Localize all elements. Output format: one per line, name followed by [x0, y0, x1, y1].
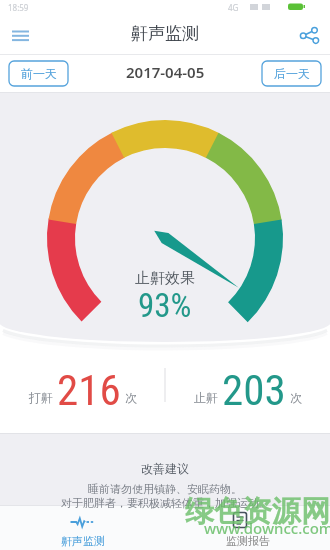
staticText: 鼾声监测	[61, 534, 105, 548]
staticText: 止鼾效果	[135, 269, 195, 288]
staticText: 203	[222, 365, 286, 415]
staticText: 止鼾	[194, 390, 218, 405]
staticText: 打鼾	[29, 390, 53, 405]
staticText: 前一天	[21, 66, 57, 81]
button[interactable]: 前一天	[9, 61, 68, 86]
button[interactable]	[294, 22, 326, 50]
staticText: 216	[57, 365, 121, 415]
staticText: 18:59	[8, 2, 29, 13]
staticText: 监测报告	[226, 534, 270, 548]
staticText: www.downcc.com	[204, 518, 330, 538]
staticText: 4G	[228, 2, 239, 13]
staticText: 鼾声监测	[131, 23, 199, 44]
button[interactable]	[4, 22, 38, 50]
staticText: 93%	[138, 286, 192, 325]
button[interactable]: 后一天	[262, 61, 321, 86]
staticText: 2017-04-05	[126, 62, 205, 82]
staticText: 次	[125, 390, 137, 405]
button[interactable]: 监测报告	[165, 506, 330, 550]
staticText: 绿色资源网	[185, 493, 330, 530]
staticText: 后一天	[274, 66, 310, 81]
staticText: 次	[290, 390, 302, 405]
staticText: 对于肥胖者，要积极减轻体重，加强运动。	[61, 496, 270, 510]
staticText: 改善建议	[141, 461, 189, 476]
staticText: 睡前请勿使用镇静、安眠药物。	[88, 482, 242, 496]
button[interactable]: 鼾声监测	[0, 506, 165, 550]
